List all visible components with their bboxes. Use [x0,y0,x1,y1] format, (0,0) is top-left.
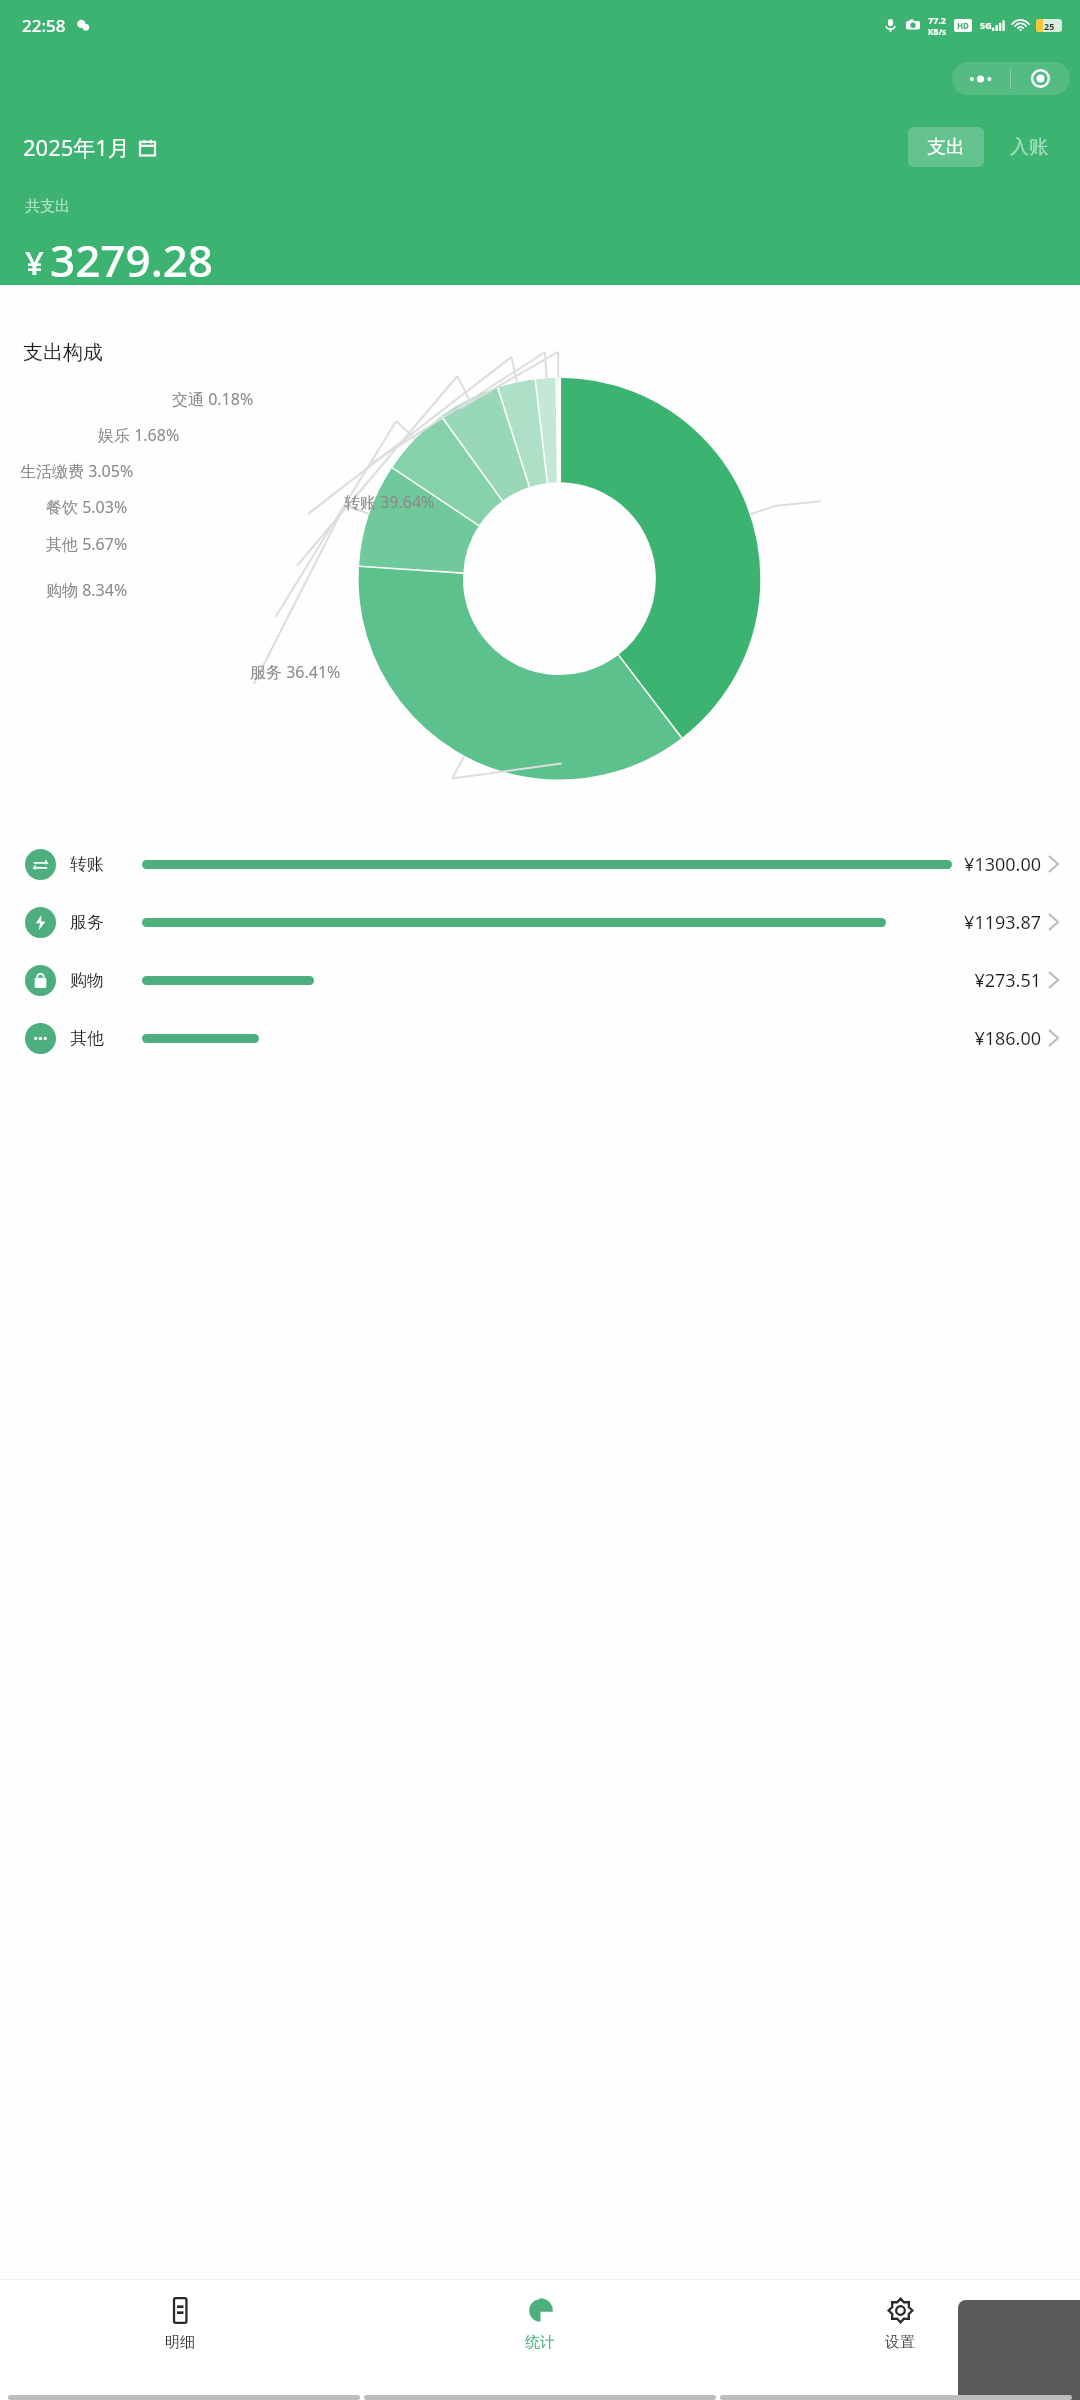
staticText: 服务 36.41% [250,661,341,683]
button[interactable]: 服务 [0,893,1080,951]
staticText: 入账 [1010,135,1048,159]
staticText: 25 [1044,20,1055,32]
staticText: 其他 5.67% [46,533,128,555]
staticText: 服务 [70,912,126,933]
button[interactable]: 选择月份 [139,139,156,156]
staticText: 购物 8.34% [46,579,128,601]
staticText: 购物 [70,970,126,991]
staticText: ¥186.00 [974,1026,1041,1051]
staticText: HD [957,20,969,31]
staticText: 其他 [70,1028,126,1049]
staticText: 5G [980,19,992,31]
button[interactable]: 转账 [0,835,1080,893]
staticText: 共支出 [25,197,70,216]
staticText: KB/s [928,26,946,37]
staticText: 2025年1月 [23,132,130,162]
button[interactable]: 其他 [0,1009,1080,1067]
button[interactable]: 入账 [998,127,1060,167]
staticText: 餐饮 5.03% [46,496,128,518]
staticText: 3279.28 [50,230,213,285]
staticText: 转账 [70,854,126,875]
button[interactable]: 设置 [720,2280,1080,2400]
staticText: 生活缴费 3.05% [20,460,134,482]
staticText: 统计 [525,2333,555,2352]
staticText: ¥ [25,240,44,285]
staticText: ¥1193.87 [964,910,1041,935]
staticText: 支出构成 [23,340,103,365]
button[interactable]: 支出 [908,127,984,167]
staticText: 支出 [927,135,965,159]
staticText: ¥1300.00 [964,852,1041,877]
button[interactable]: 统计 [360,2280,720,2400]
button[interactable]: 明细 [0,2280,360,2400]
staticText: 转账 39.64% [344,491,435,513]
staticText: 交通 0.18% [172,388,254,410]
button[interactable]: 关闭 [1011,62,1070,95]
staticText: 22:58 [22,14,66,37]
button[interactable]: 购物 [0,951,1080,1009]
staticText: 77.2 [928,14,946,26]
staticText: 设置 [885,2333,915,2352]
staticText: 娱乐 1.68% [98,424,180,446]
button[interactable]: 更多 [952,62,1010,95]
staticText: 明细 [165,2333,195,2352]
staticText: ¥273.51 [974,968,1041,993]
